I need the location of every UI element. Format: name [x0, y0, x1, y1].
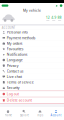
button[interactable]: Settings	[60, 4, 62, 7]
button[interactable]: My orders	[0, 41, 64, 46]
button[interactable]: Payment methods	[0, 35, 64, 40]
staticText: Notifications	[7, 52, 28, 57]
button[interactable]: Live chat	[0, 74, 64, 79]
button[interactable]: Favourites	[0, 46, 64, 52]
button[interactable]: Personal info	[0, 29, 64, 35]
button[interactable]: Home	[0, 107, 16, 120]
staticText: Live chat	[7, 74, 22, 79]
staticText: My orders	[7, 41, 23, 46]
staticText: Security	[7, 85, 20, 90]
button[interactable]: Brand	[2, 4, 8, 7]
staticText: Privacy	[7, 63, 19, 68]
button[interactable]: Privacy	[0, 63, 64, 68]
staticText: Trips	[37, 114, 43, 117]
button[interactable]: Notifications	[0, 52, 64, 57]
staticText: Account	[50, 114, 61, 117]
button[interactable]: Security	[0, 85, 64, 90]
staticText: Contact us	[7, 69, 24, 73]
button[interactable]: Language	[0, 57, 64, 63]
staticText: Home	[4, 114, 11, 117]
staticText: My vehicle	[23, 8, 41, 13]
staticText: Personal info	[7, 30, 28, 35]
staticText: 4.9	[51, 15, 56, 20]
staticText: Favourites	[7, 47, 24, 51]
button[interactable]: Contact us	[0, 68, 64, 74]
button[interactable]: Terms of service	[0, 79, 64, 85]
staticText: 12	[46, 15, 50, 20]
staticText: Language	[7, 58, 23, 62]
button[interactable]: Explore	[16, 107, 32, 120]
staticText: 88	[58, 15, 62, 20]
staticText: Payment methods	[7, 35, 36, 40]
button[interactable]: Delete account	[0, 97, 64, 103]
staticText: Delete account	[7, 98, 32, 103]
staticText: Terms of service	[7, 80, 34, 85]
button[interactable]: Log out	[0, 91, 64, 97]
staticText: ACCOUNT	[2, 26, 15, 29]
button[interactable]: Account	[48, 107, 64, 120]
staticText: Log out	[7, 92, 19, 96]
button[interactable]: Trips	[32, 107, 48, 120]
button[interactable]: Notifications	[55, 4, 58, 7]
staticText: Explore	[19, 114, 28, 117]
